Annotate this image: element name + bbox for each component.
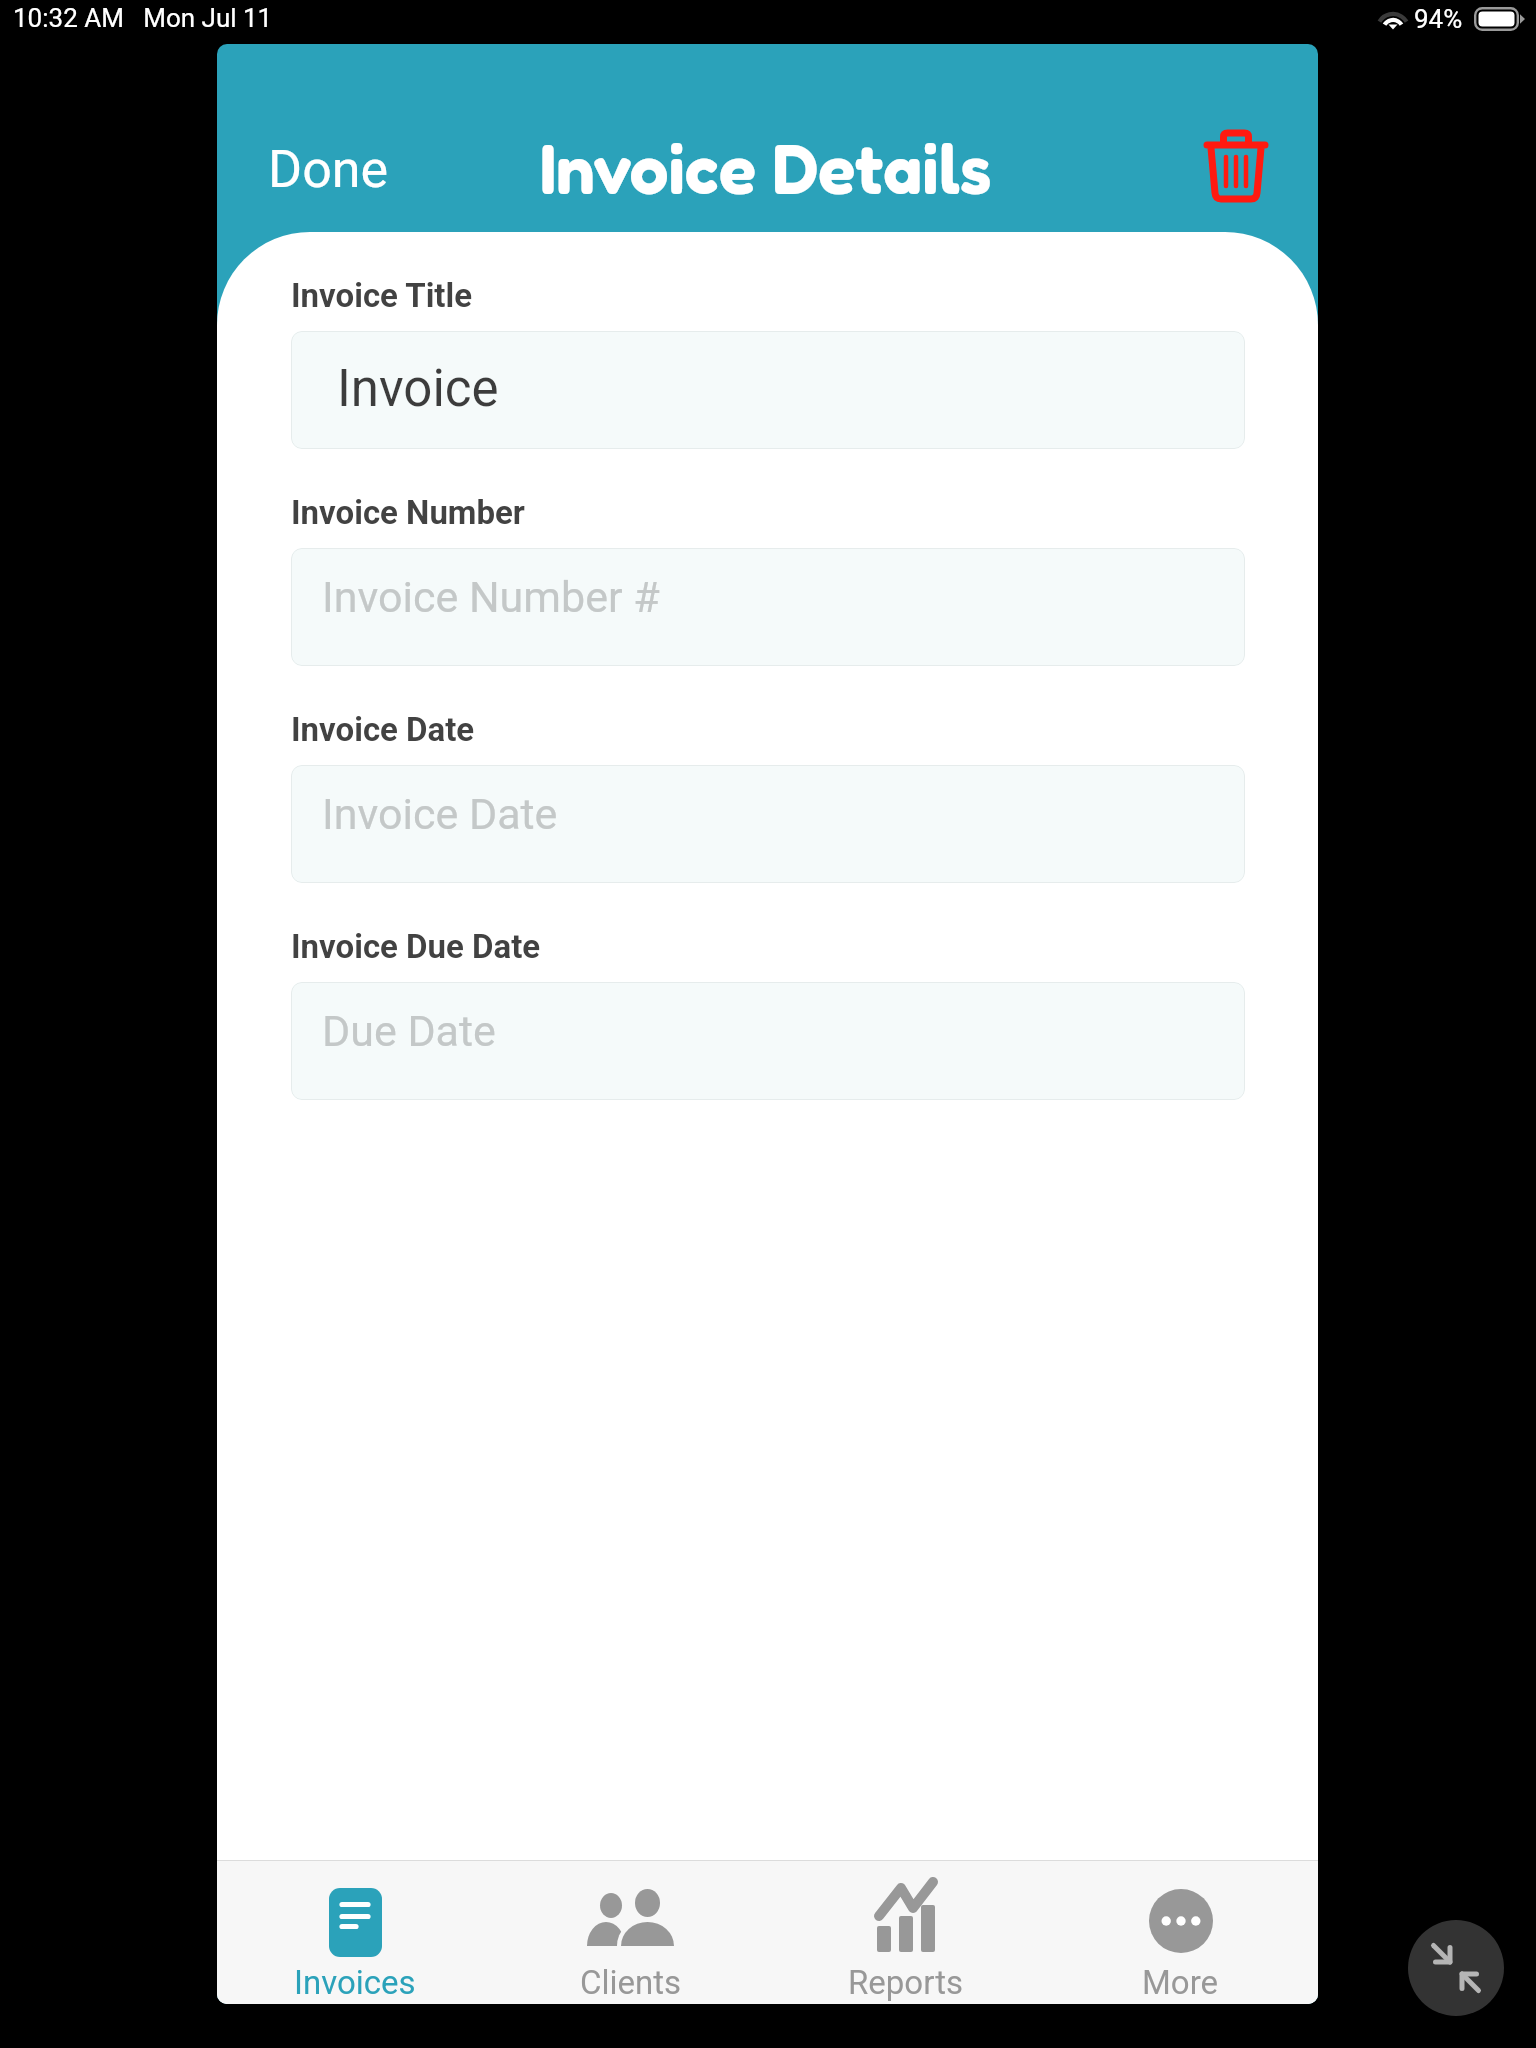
staticText: More [1142, 1963, 1219, 2002]
button[interactable]: Delete [1188, 117, 1284, 213]
staticText: Invoice [337, 359, 499, 419]
staticText: Invoice Details [540, 126, 992, 209]
staticText: Invoices [294, 1963, 416, 2002]
staticText: Invoice Number # [322, 572, 660, 622]
staticText: Invoice Date [291, 710, 475, 749]
button[interactable]: Reports [768, 1861, 1043, 2004]
staticText: Done [268, 139, 389, 200]
staticText: Invoice Title [291, 276, 473, 315]
button[interactable]: More [1043, 1861, 1318, 2004]
staticText: Clients [580, 1963, 682, 2002]
staticText: Invoice Number [291, 493, 525, 532]
staticText: Invoice Due Date [291, 927, 541, 966]
button[interactable]: Invoice Number # [291, 548, 1245, 666]
button[interactable]: Clients [493, 1861, 768, 2004]
staticText: 94% [1414, 4, 1463, 34]
button[interactable]: Invoice Date [291, 765, 1245, 883]
staticText: 10:32 AM Mon Jul 11 [13, 3, 273, 33]
button[interactable]: Invoices [217, 1861, 493, 2004]
button[interactable]: Invoice [291, 331, 1245, 449]
button[interactable]: Due Date [291, 982, 1245, 1100]
button[interactable]: Minimize [1408, 1920, 1504, 2016]
staticText: Reports [848, 1963, 964, 2002]
staticText: Due Date [322, 1006, 496, 1056]
button[interactable]: Done [252, 127, 405, 212]
staticText: Invoice Date [322, 789, 558, 839]
